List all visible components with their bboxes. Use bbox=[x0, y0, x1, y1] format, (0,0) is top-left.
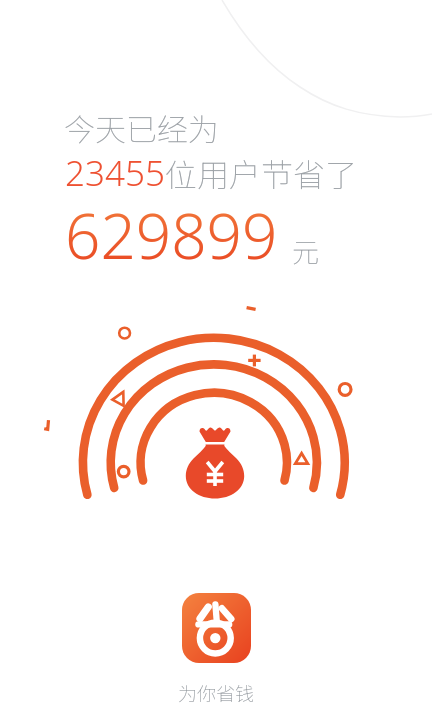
button[interactable]: App logo bbox=[182, 593, 251, 663]
staticText: 今天已经为 bbox=[64, 105, 219, 150]
staticText: 23455 bbox=[65, 149, 165, 197]
staticText: 位用户节省了 bbox=[165, 150, 358, 196]
staticText: 元 bbox=[292, 231, 319, 270]
staticText: 629899 bbox=[65, 193, 278, 277]
staticText: 为你省钱 bbox=[178, 679, 255, 707]
